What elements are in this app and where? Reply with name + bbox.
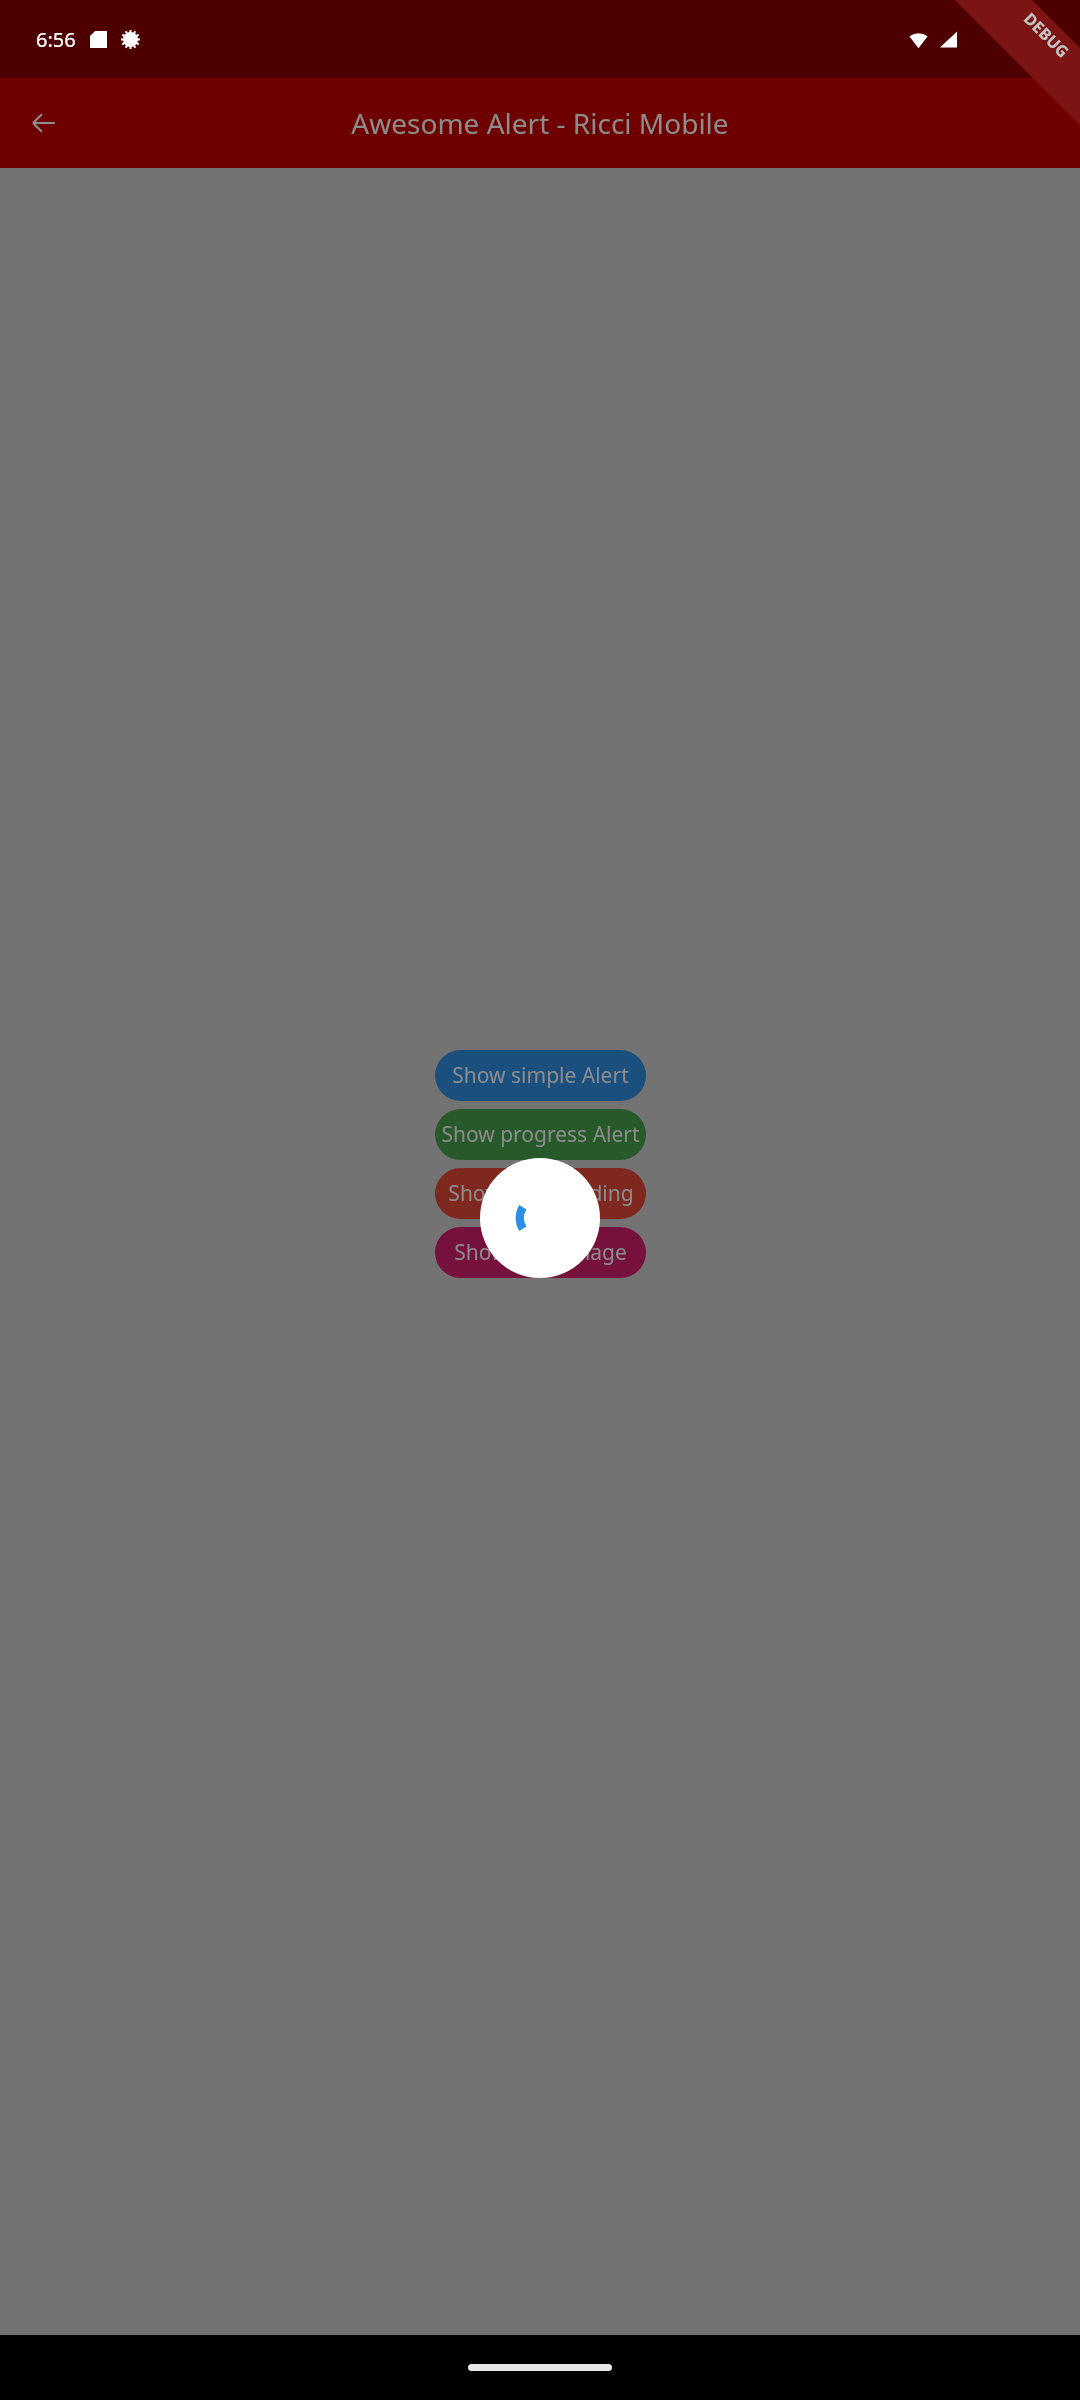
staticText: Show Alert image <box>454 1238 627 1267</box>
staticText: 6:56 <box>36 26 76 53</box>
button[interactable]: Show simple Alert <box>435 1050 646 1101</box>
button[interactable]: Show progress Alert <box>435 1109 646 1160</box>
staticText: Show progress Alert <box>441 1120 640 1149</box>
button[interactable]: Show Alert loading <box>435 1168 646 1219</box>
staticText: Show Alert loading <box>448 1179 634 1208</box>
staticText: Show simple Alert <box>452 1061 629 1090</box>
staticText: DEBUG <box>1019 8 1074 62</box>
staticText: Awesome Alert - Ricci Mobile <box>351 104 729 142</box>
button[interactable]: Back <box>16 95 72 151</box>
button[interactable]: Show Alert image <box>435 1227 646 1278</box>
